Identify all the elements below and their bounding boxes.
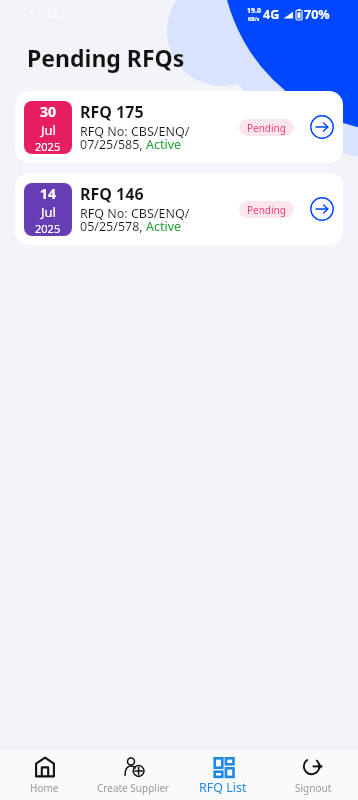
button[interactable]: Pending <box>239 201 294 218</box>
staticText: Pending RFQs <box>27 42 185 73</box>
button[interactable]: 30 <box>15 91 343 163</box>
staticText: RFQ No: CBS/ENQ/ 05/25/578, Active <box>80 205 190 235</box>
button[interactable]: Home <box>0 750 89 800</box>
staticText: Pending <box>247 121 286 135</box>
button[interactable]: Open RFQ <box>310 197 334 221</box>
staticText: 19.0 <box>247 6 261 16</box>
staticText: 2025 <box>35 221 61 236</box>
staticText: RFQ 146 <box>80 183 144 205</box>
staticText: Create Supplier <box>97 781 170 795</box>
button[interactable]: Open RFQ <box>310 115 334 139</box>
staticText: RFQ 175 <box>80 101 144 123</box>
button[interactable]: Pending <box>239 119 294 136</box>
staticText: Pending <box>247 203 286 217</box>
staticText: RFQ No: CBS/ENQ/ 07/25/585, Active <box>80 123 190 153</box>
button[interactable]: Signout <box>268 750 358 800</box>
staticText: 70% <box>304 6 330 23</box>
staticText: 2025 <box>35 139 61 154</box>
staticText: Jul <box>41 121 56 139</box>
button[interactable]: Create Supplier <box>89 750 178 800</box>
staticText: 30 <box>40 102 57 121</box>
staticText: Home <box>30 781 59 795</box>
staticText: RFQ List <box>199 779 247 796</box>
staticText: 14 <box>40 184 57 203</box>
staticText: 4G <box>263 6 280 23</box>
staticText: Signout <box>295 781 332 795</box>
staticText: KB/s <box>248 16 260 23</box>
button[interactable]: 14 <box>15 173 343 245</box>
staticText: Jul <box>41 203 56 221</box>
button[interactable]: RFQ List <box>178 750 268 800</box>
